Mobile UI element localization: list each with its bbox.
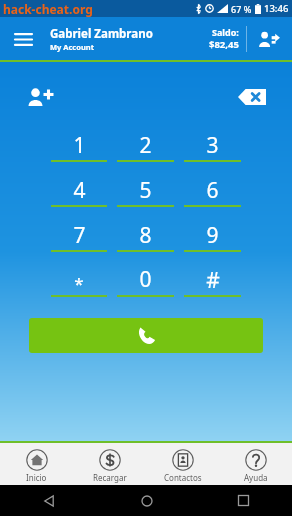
button[interactable]: 4 [46, 175, 112, 220]
button[interactable]: 6 [179, 175, 246, 220]
staticText: 67 % [231, 3, 252, 15]
staticText: * [74, 272, 84, 295]
button[interactable]: Menu [8, 24, 38, 54]
staticText: My Account [50, 42, 94, 52]
button[interactable]: * [46, 265, 112, 310]
button[interactable]: 0 [112, 265, 179, 310]
staticText: Contactos [164, 472, 202, 483]
staticText: $82,45 [209, 38, 239, 51]
button[interactable]: Transfer contact [254, 24, 284, 54]
button[interactable]: Backspace [232, 80, 272, 114]
button[interactable]: Call [29, 318, 263, 353]
staticText: 5 [139, 176, 152, 205]
staticText: 13:46 [264, 2, 289, 15]
staticText: 8 [139, 221, 152, 250]
staticText: Inicio [26, 472, 47, 483]
button[interactable]: Recargar [73, 446, 146, 483]
button[interactable]: 5 [112, 175, 179, 220]
staticText: 7 [73, 221, 86, 250]
button[interactable]: Inicio [0, 446, 73, 483]
staticText: # [206, 266, 220, 295]
button[interactable]: 1 [46, 130, 112, 175]
staticText: hack-cheat.org [3, 1, 93, 17]
button[interactable]: # [179, 265, 246, 310]
button[interactable]: 7 [46, 220, 112, 265]
button[interactable]: 9 [179, 220, 246, 265]
staticText: Recargar [93, 472, 127, 483]
button[interactable]: Ayuda [219, 446, 292, 483]
staticText: 0 [139, 265, 152, 294]
button[interactable]: 3 [179, 130, 246, 175]
button[interactable]: 8 [112, 220, 179, 265]
staticText: 9 [206, 221, 219, 250]
staticText: 3 [206, 131, 219, 160]
button[interactable]: 2 [112, 130, 179, 175]
staticText: 2 [139, 131, 152, 160]
staticText: Gabriel Zambrano [50, 26, 153, 42]
staticText: Saldo: [212, 26, 239, 38]
button[interactable]: Contactos [146, 446, 219, 483]
staticText: 6 [206, 176, 219, 205]
button[interactable]: Add contact [20, 80, 60, 114]
staticText: Ayuda [244, 472, 268, 483]
staticText: 4 [73, 176, 86, 205]
staticText: 1 [73, 131, 86, 160]
